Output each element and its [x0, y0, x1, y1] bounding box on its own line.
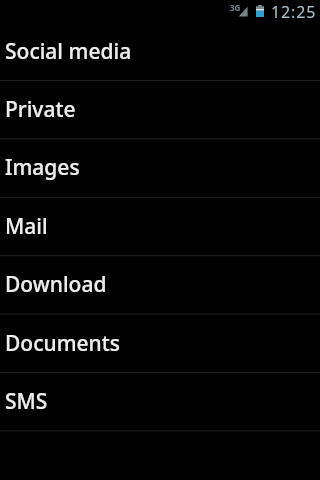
- button[interactable]: Download: [0, 256, 320, 314]
- staticText: 12:25: [271, 1, 317, 22]
- button[interactable]: Documents: [0, 315, 320, 373]
- staticText: Documents: [5, 329, 121, 358]
- other: Battery: [256, 5, 264, 17]
- staticText: Download: [5, 270, 107, 299]
- staticText: Private: [5, 95, 76, 124]
- button[interactable]: SMS: [0, 373, 320, 431]
- button[interactable]: Social media: [0, 23, 320, 81]
- staticText: 3G: [230, 2, 241, 13]
- staticText: Social media: [5, 37, 132, 66]
- button[interactable]: Mail: [0, 198, 320, 256]
- staticText: Images: [5, 153, 80, 182]
- other: Mobile signal 3G: [230, 2, 248, 18]
- button[interactable]: Images: [0, 139, 320, 197]
- staticText: Mail: [5, 212, 48, 241]
- button[interactable]: Private: [0, 81, 320, 139]
- staticText: SMS: [5, 387, 48, 416]
